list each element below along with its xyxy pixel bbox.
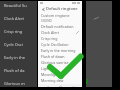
button[interactable]: Crisp ring: [38, 35, 82, 41]
button[interactable]: Flush of da: [4, 68, 37, 73]
staticText: Flush of da: [4, 68, 25, 73]
staticText: Crisp ring: [4, 29, 23, 34]
staticText: Cycle Oscillation: [41, 42, 69, 47]
button[interactable]: Glorious sunrise: [38, 59, 82, 65]
staticText: Custom ringtone: [41, 13, 70, 18]
staticText: Morning dew: [41, 78, 64, 83]
button[interactable]: Moonlight: [38, 71, 82, 77]
button[interactable]: Recents: [70, 85, 75, 90]
staticText: Crisp ring: [41, 36, 58, 41]
staticText: Beautiful Su: [4, 3, 27, 8]
button[interactable]: Crisp ring: [4, 29, 37, 34]
staticText: Cycle Osci: [4, 42, 23, 47]
button[interactable]: Clock Alert: [38, 29, 82, 35]
button[interactable]: Early in the: [4, 55, 37, 60]
staticText: Early in the: [4, 55, 25, 60]
staticText: Clock Alert: [41, 30, 59, 35]
button[interactable]: Cycle Oscillation: [38, 41, 82, 47]
button[interactable]: Glorious m: [4, 81, 37, 86]
staticText: Glorious sunrise: [41, 60, 69, 65]
button[interactable]: Home: [58, 85, 63, 90]
staticText: SOUND: [41, 19, 52, 23]
button[interactable]: Custom ringtone: [38, 12, 82, 18]
staticText: Glorious m: [4, 81, 25, 86]
staticText: Clock Alert: [4, 16, 25, 21]
staticText: Default notification sound: [41, 24, 79, 29]
button[interactable]: Back: [45, 85, 50, 90]
staticText: Default ringtone: [46, 6, 78, 11]
button[interactable]: Beautiful Su: [4, 3, 37, 8]
button[interactable]: Default notification sound: [38, 23, 82, 29]
staticText: Early in the morning: [41, 48, 76, 53]
button[interactable]: Lights: [38, 65, 82, 71]
staticText: Moonlight: [41, 72, 59, 77]
button[interactable]: Cycle Osci: [4, 42, 37, 47]
button[interactable]: Back: [40, 6, 46, 12]
staticText: Flush of dawn: [41, 54, 65, 59]
staticText: Lights: [41, 66, 52, 71]
button[interactable]: Flush of dawn: [38, 53, 82, 59]
button[interactable]: Early in the morning: [38, 47, 82, 53]
button[interactable]: Morning dew: [38, 77, 82, 83]
button[interactable]: Clock Alert: [4, 16, 37, 21]
